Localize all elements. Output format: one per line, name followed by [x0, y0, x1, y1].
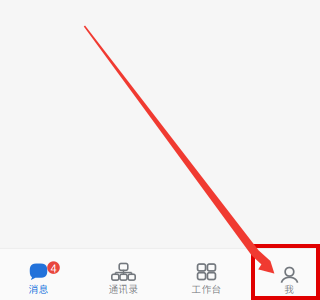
staticText: 通讯录	[108, 281, 138, 295]
button[interactable]: 4	[0, 248, 78, 300]
button[interactable]: 我	[249, 248, 320, 300]
button[interactable]: 通讯录	[83, 248, 163, 300]
staticText: 消息	[28, 281, 48, 295]
button[interactable]: 工作台	[166, 248, 246, 300]
staticText: 4	[50, 259, 56, 276]
staticText: 我	[284, 281, 294, 295]
staticText: 工作台	[191, 281, 221, 295]
